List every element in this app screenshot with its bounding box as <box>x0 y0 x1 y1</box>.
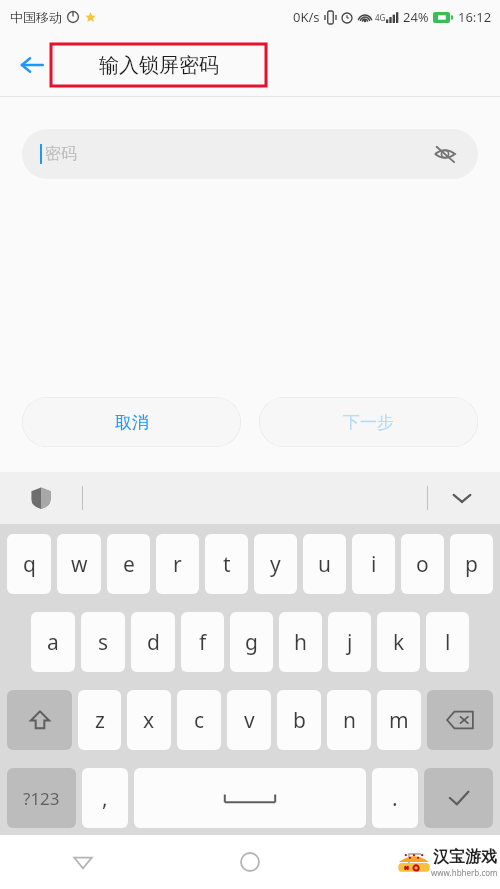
button[interactable]: h <box>279 612 322 672</box>
staticText: g <box>245 628 258 657</box>
button[interactable]: v <box>227 690 271 750</box>
button[interactable]: g <box>230 612 273 672</box>
staticText: 中国移动 <box>10 9 62 25</box>
button[interactable]: o <box>401 534 444 594</box>
staticText: j <box>347 628 353 657</box>
button[interactable]: ?123 <box>7 768 76 828</box>
button[interactable]: n <box>327 690 371 750</box>
staticText: t <box>223 550 231 579</box>
staticText: w <box>71 550 88 579</box>
staticText: i <box>371 550 377 579</box>
staticText: h <box>294 628 307 657</box>
staticText: 下一步 <box>343 412 394 433</box>
button[interactable]: Home <box>166 835 333 889</box>
staticText: l <box>445 628 451 657</box>
button[interactable]: l <box>426 612 469 672</box>
staticText: k <box>393 628 405 657</box>
staticText: s <box>98 628 109 657</box>
button[interactable]: , <box>82 768 128 828</box>
staticText: o <box>416 550 429 579</box>
staticText: z <box>95 706 105 735</box>
staticText: 4G <box>375 12 386 23</box>
button[interactable]: b <box>277 690 321 750</box>
staticText: 16:12 <box>458 8 492 26</box>
staticText: 密码 <box>45 144 77 164</box>
button[interactable]: Hide keyboard <box>446 482 478 514</box>
button[interactable]: . <box>372 768 418 828</box>
button[interactable]: 取消 <box>22 397 241 447</box>
button[interactable]: x <box>127 690 171 750</box>
staticText: f <box>199 628 207 657</box>
button[interactable]: k <box>377 612 420 672</box>
staticText: 取消 <box>115 412 149 433</box>
button[interactable]: f <box>181 612 224 672</box>
staticText: 输入锁屏密码 <box>99 53 219 78</box>
staticText: ?123 <box>23 787 60 810</box>
button[interactable]: j <box>328 612 371 672</box>
button[interactable]: m <box>377 690 421 750</box>
staticText: n <box>343 706 356 735</box>
staticText: u <box>318 550 331 579</box>
button[interactable]: i <box>352 534 395 594</box>
staticText: v <box>244 706 255 735</box>
staticText: r <box>173 550 182 579</box>
button[interactable]: c <box>177 690 221 750</box>
staticText: p <box>465 550 478 579</box>
button[interactable]: Backspace <box>427 690 493 750</box>
button[interactable]: z <box>78 690 121 750</box>
button[interactable]: Back <box>14 47 50 83</box>
staticText: m <box>389 706 409 735</box>
staticText: 0K/s <box>293 8 320 26</box>
button[interactable]: q <box>7 534 51 594</box>
staticText: c <box>194 706 205 735</box>
button[interactable]: Show password <box>430 139 460 169</box>
staticText: 汉宝游戏 <box>433 847 497 867</box>
staticText: x <box>143 706 155 735</box>
button[interactable]: Enter <box>424 768 493 828</box>
button[interactable]: s <box>81 612 125 672</box>
button[interactable]: Secure input <box>26 483 56 513</box>
staticText: a <box>47 628 59 657</box>
staticText: e <box>123 550 135 579</box>
button[interactable]: Back <box>0 835 166 889</box>
staticText: , <box>102 784 108 813</box>
button[interactable]: Shift <box>7 690 72 750</box>
button[interactable]: p <box>450 534 493 594</box>
button[interactable]: 下一步 <box>259 397 478 447</box>
staticText: b <box>293 706 306 735</box>
button[interactable]: Space <box>134 768 366 828</box>
staticText: y <box>270 550 281 579</box>
button[interactable]: t <box>205 534 248 594</box>
button[interactable]: e <box>107 534 150 594</box>
button[interactable]: u <box>303 534 346 594</box>
staticText: . <box>392 784 398 813</box>
button[interactable]: d <box>131 612 175 672</box>
staticText: q <box>23 550 36 579</box>
button[interactable]: r <box>156 534 199 594</box>
staticText: 24% <box>403 8 429 26</box>
staticText: www.hbherb.com <box>431 867 498 878</box>
button[interactable]: 密码 <box>22 129 478 179</box>
staticText: d <box>147 628 160 657</box>
button[interactable]: y <box>254 534 297 594</box>
button[interactable]: a <box>31 612 75 672</box>
button[interactable]: w <box>57 534 101 594</box>
button[interactable]: Recents <box>333 835 500 889</box>
